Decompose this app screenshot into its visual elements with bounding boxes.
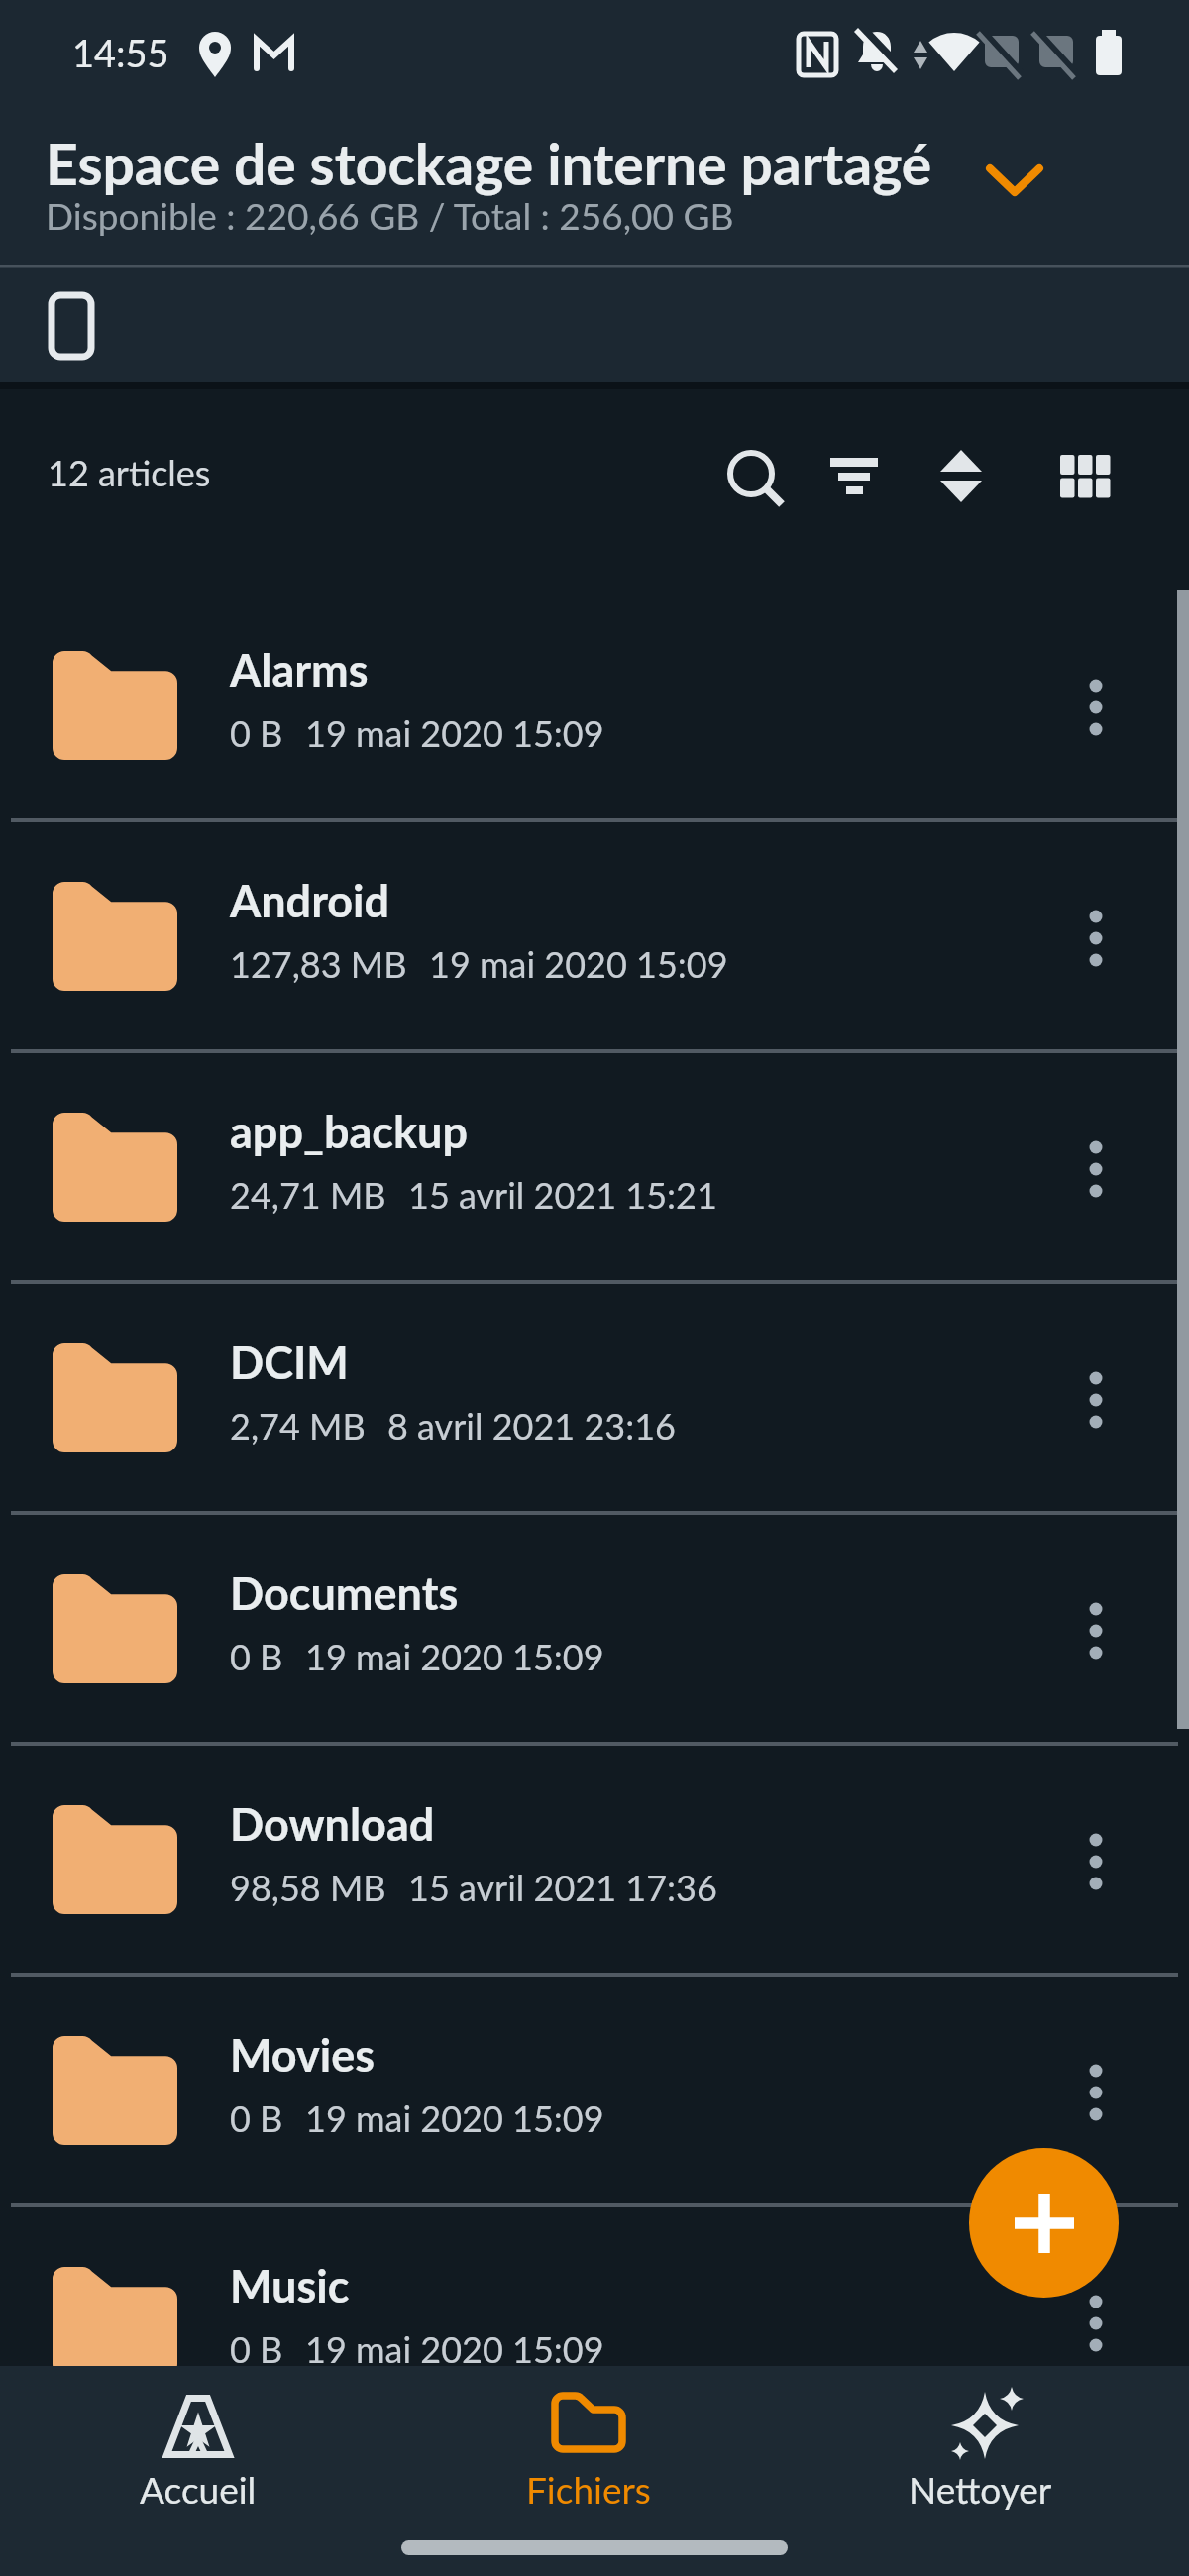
staticText: 0 B [230,711,283,754]
staticText: 19 mai 2020 15:09 [305,711,604,754]
staticText: Disponible : 220,66 GB / Total : 256,00 … [46,193,734,237]
staticText: 19 mai 2020 15:09 [305,2327,604,2370]
staticText: Nettoyer [909,2467,1052,2511]
button[interactable]: Download [0,1746,1189,1977]
button[interactable]: Accueil [40,2366,357,2544]
staticText: Android [230,874,390,927]
button[interactable] [1040,446,1130,535]
button[interactable]: Nettoyer [821,2366,1138,2544]
staticText: 98,58 MB [230,1866,386,1908]
button[interactable] [30,277,114,376]
staticText: 24,71 MB [230,1173,386,1216]
staticText: 19 mai 2020 15:09 [305,2096,604,2139]
staticText: 15 avril 2021 15:21 [408,1173,717,1216]
staticText: Music [230,2259,350,2312]
staticText: 8 avril 2021 23:16 [387,1404,676,1447]
button[interactable] [862,446,951,535]
button[interactable]: app_backup [0,1053,1189,1284]
staticText: 19 mai 2020 15:09 [429,942,728,985]
staticText: 14:55 [72,30,169,75]
staticText: DCIM [230,1336,349,1389]
button[interactable]: Android [0,822,1189,1053]
staticText: Fichiers [526,2467,651,2511]
staticText: Movies [230,2028,375,2082]
staticText: 127,83 MB [230,942,407,985]
staticText: 0 B [230,2327,283,2370]
button[interactable]: Movies [0,1977,1189,2207]
button[interactable] [773,446,862,535]
button[interactable]: Music [0,2207,1189,2438]
staticText: 15 avril 2021 17:36 [408,1866,717,1908]
staticText: 0 B [230,1635,283,1677]
staticText: Accueil [140,2467,257,2511]
button[interactable]: Documents [0,1515,1189,1746]
button[interactable]: Fichiers [430,2366,747,2544]
staticText: Alarms [230,643,369,697]
staticText: 19 mai 2020 15:09 [305,1635,604,1677]
button[interactable] [951,446,1040,535]
staticText: 12 articles [48,451,211,493]
staticText: app_backup [230,1105,469,1158]
staticText: 2,74 MB [230,1404,366,1447]
button[interactable]: Alarms [0,591,1189,822]
button[interactable]: DCIM [0,1284,1189,1515]
staticText: Documents [230,1566,459,1620]
staticText: Espace de stockage interne partagé [46,130,932,197]
staticText: Download [230,1797,435,1851]
button[interactable] [969,2148,1119,2298]
staticText: 0 B [230,2096,283,2139]
